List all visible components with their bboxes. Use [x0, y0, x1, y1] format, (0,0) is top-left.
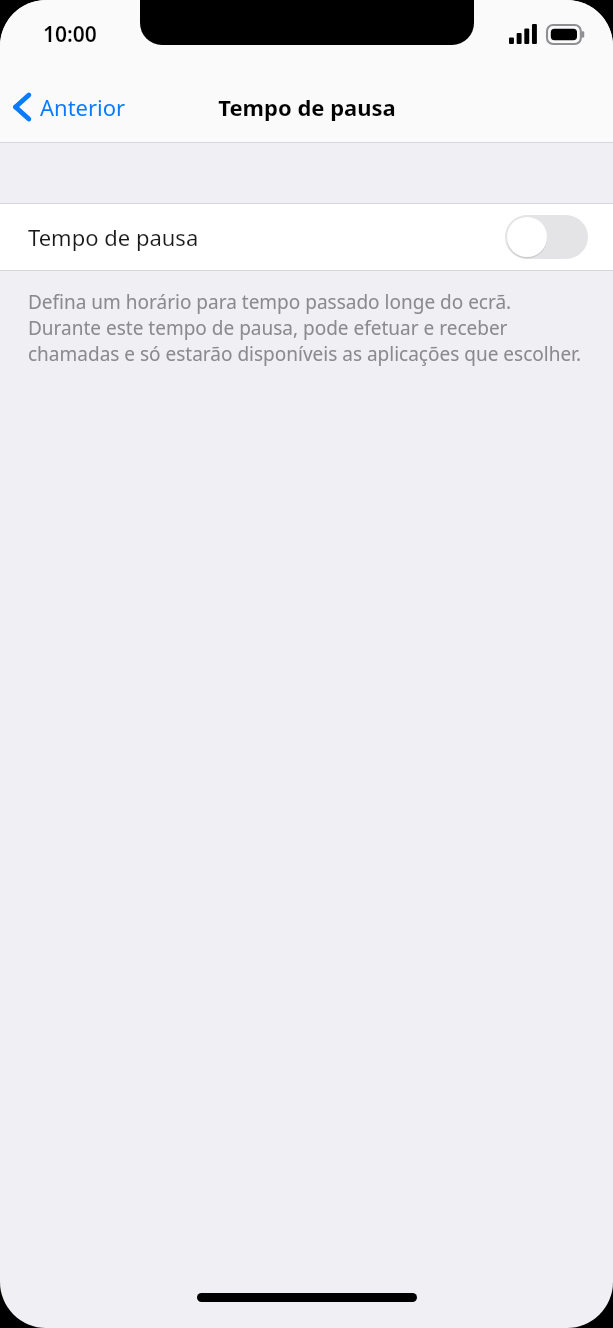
button[interactable]: Tempo de pausa: [0, 204, 613, 270]
staticText: Tempo de pausa: [218, 92, 396, 122]
staticText: Tempo de pausa: [28, 222, 505, 252]
staticText: Anterior: [40, 92, 126, 122]
other: Battery: [547, 25, 585, 44]
other: Back: [13, 92, 31, 122]
other: Cellular signal: [509, 24, 538, 44]
staticText: Defina um horário para tempo passado lon…: [28, 289, 585, 367]
staticText: 10:00: [43, 20, 97, 49]
button[interactable]: Tempo de pausa toggle: [505, 215, 588, 259]
button[interactable]: Back: [0, 84, 136, 130]
